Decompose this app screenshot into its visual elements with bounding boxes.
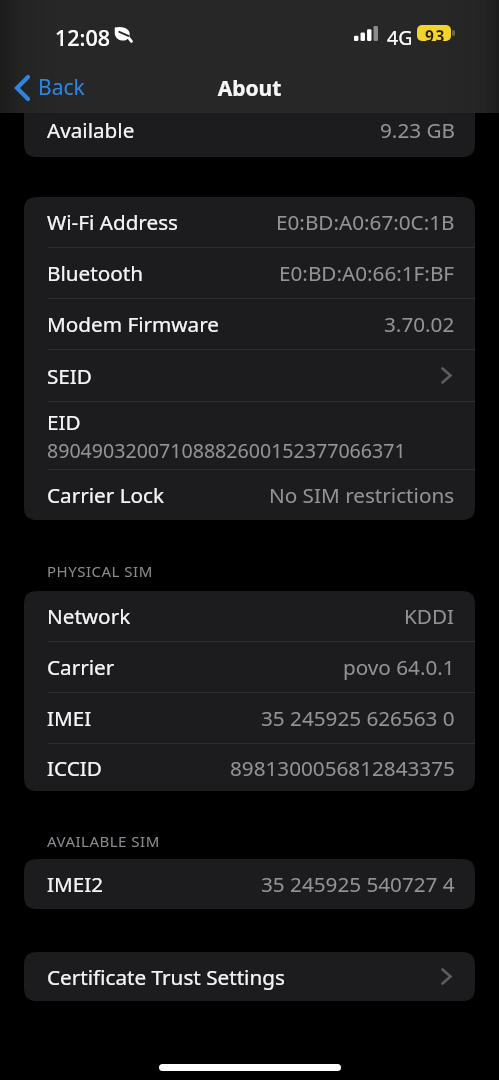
staticText: 35 245925 626563 0: [261, 704, 455, 732]
staticText: povo 64.0.1: [343, 653, 455, 681]
staticText: 8981300056812843375: [230, 754, 455, 782]
button[interactable]: Back: [0, 69, 95, 106]
staticText: E0:BD:A0:67:0C:1B: [276, 208, 455, 236]
staticText: PHYSICAL SIM: [47, 561, 153, 581]
button[interactable]: SEID: [24, 350, 475, 401]
staticText: 89049032007108882600152377066371: [47, 437, 406, 464]
staticText: Wi-Fi Address: [47, 208, 178, 236]
button[interactable]: Carrier: [24, 642, 475, 692]
staticText: 35 245925 540727 4: [261, 870, 455, 898]
staticText: Bluetooth: [47, 259, 143, 287]
staticText: Available: [47, 116, 135, 144]
staticText: IMEI2: [47, 870, 104, 898]
button[interactable]: EID: [24, 402, 475, 469]
staticText: KDDI: [404, 602, 455, 630]
staticText: AVAILABLE SIM: [47, 831, 160, 851]
button[interactable]: IMEI: [24, 693, 475, 743]
staticText: Carrier Lock: [47, 481, 165, 509]
staticText: 4G: [387, 24, 413, 51]
button[interactable]: Certificate Trust Settings: [24, 952, 475, 1001]
staticText: About: [0, 74, 499, 103]
staticText: 12:08: [55, 23, 111, 52]
staticText: Back: [38, 73, 85, 102]
staticText: IMEI: [47, 704, 92, 732]
staticText: No SIM restrictions: [269, 481, 455, 509]
button[interactable]: ICCID: [24, 744, 475, 791]
button[interactable]: IMEI2: [24, 859, 475, 909]
staticText: Carrier: [47, 653, 115, 681]
staticText: Certificate Trust Settings: [47, 963, 285, 991]
staticText: Network: [47, 602, 131, 630]
button[interactable]: Bluetooth: [24, 248, 475, 298]
button[interactable]: Available: [24, 113, 475, 157]
staticText: E0:BD:A0:66:1F:BF: [279, 259, 455, 287]
staticText: SEID: [47, 362, 92, 390]
button[interactable]: Carrier Lock: [24, 470, 475, 520]
button[interactable]: Wi-Fi Address: [24, 197, 475, 247]
staticText: 9.23 GB: [380, 116, 455, 144]
staticText: 93: [425, 25, 446, 41]
staticText: EID: [47, 408, 81, 436]
other: Low Power Mode: [114, 26, 132, 42]
button[interactable]: Network: [24, 591, 475, 641]
button[interactable]: Modem Firmware: [24, 299, 475, 349]
staticText: 3.70.02: [384, 310, 455, 338]
staticText: ICCID: [47, 754, 102, 782]
staticText: Modem Firmware: [47, 310, 220, 338]
other: Cellular signal: [354, 26, 378, 41]
